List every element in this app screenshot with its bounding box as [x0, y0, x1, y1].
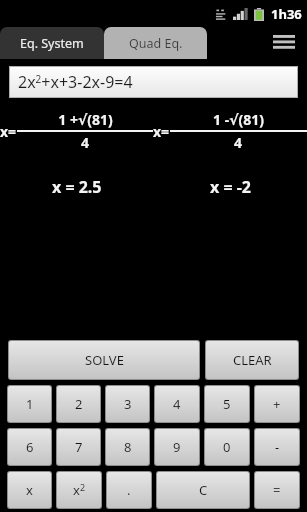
button[interactable]: +	[255, 386, 299, 422]
staticText: x=	[153, 122, 170, 141]
button[interactable]: 6	[8, 429, 51, 465]
button[interactable]: 8	[106, 429, 149, 465]
button[interactable]: x2	[57, 472, 101, 508]
staticText: 1	[26, 395, 34, 413]
staticText: 1 -√(81)	[213, 110, 264, 129]
staticText: x=	[0, 122, 17, 141]
staticText: SOLVE	[85, 351, 124, 369]
button[interactable]: 5	[205, 386, 249, 422]
button[interactable]: 7	[57, 429, 100, 465]
button[interactable]: CLEAR	[206, 341, 298, 379]
button[interactable]: 0	[205, 429, 249, 465]
staticText: -	[275, 438, 280, 456]
staticText: x2	[73, 481, 86, 499]
staticText: 4	[234, 133, 243, 152]
staticText: 5	[223, 395, 231, 413]
button[interactable]: =	[255, 472, 299, 508]
button[interactable]: 2	[57, 386, 100, 422]
button[interactable]: Eq. System	[0, 27, 104, 59]
staticText: 3	[124, 395, 132, 413]
button[interactable]: -	[255, 429, 299, 465]
staticText: 2x2+x+3-2x-9=4	[18, 71, 133, 93]
button[interactable]: 9	[155, 429, 199, 465]
staticText: Quad Eq.	[129, 35, 183, 52]
staticText: +	[273, 395, 281, 413]
staticText: 6	[26, 438, 34, 456]
button[interactable]: Quad Eq.	[104, 27, 207, 59]
staticText: 9	[173, 438, 181, 456]
staticText: =	[273, 481, 281, 499]
staticText: .	[127, 481, 131, 499]
staticText: 4	[173, 395, 181, 413]
staticText: C	[199, 481, 208, 499]
staticText: x	[26, 481, 33, 499]
staticText: Eq. System	[20, 35, 84, 52]
staticText: CLEAR	[233, 351, 272, 369]
button[interactable]: C	[157, 472, 249, 508]
button[interactable]: x	[8, 472, 51, 508]
button[interactable]: 2x2+x+3-2x-9=4	[10, 67, 297, 97]
staticText: 1h36	[271, 5, 302, 23]
button[interactable]: 1	[8, 386, 51, 422]
button[interactable]: Menu	[261, 27, 307, 59]
staticText: 1 +√(81)	[58, 110, 113, 129]
button[interactable]: 3	[106, 386, 149, 422]
staticText: 4	[81, 133, 90, 152]
staticText: x = 2.5	[52, 176, 102, 198]
staticText: 8	[124, 438, 132, 456]
button[interactable]: .	[107, 472, 151, 508]
staticText: x = -2	[210, 176, 251, 198]
button[interactable]: SOLVE	[9, 341, 199, 379]
staticText: 2	[75, 395, 83, 413]
button[interactable]: 4	[155, 386, 199, 422]
staticText: 0	[223, 438, 231, 456]
staticText: 7	[75, 438, 83, 456]
